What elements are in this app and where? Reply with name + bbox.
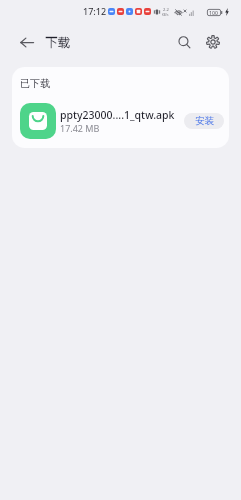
button[interactable]: Search — [175, 33, 193, 51]
button[interactable]: ppty23000....1_qtw.apk — [12, 100, 229, 142]
staticText: 17.42 MB — [60, 122, 100, 134]
button[interactable]: Settings — [204, 33, 222, 51]
staticText: 已下载 — [20, 77, 50, 90]
button[interactable]: Back — [20, 33, 38, 51]
button[interactable]: 安装 — [184, 113, 224, 129]
staticText: KB/s — [162, 13, 169, 17]
staticText: 安装 — [195, 115, 214, 127]
staticText: 下载 — [45, 32, 71, 50]
staticText: 17:12 — [83, 5, 107, 17]
staticText: ppty23000....1_qtw.apk — [60, 108, 175, 122]
staticText: 100 — [209, 9, 218, 16]
staticText: 2.2 — [163, 7, 169, 13]
